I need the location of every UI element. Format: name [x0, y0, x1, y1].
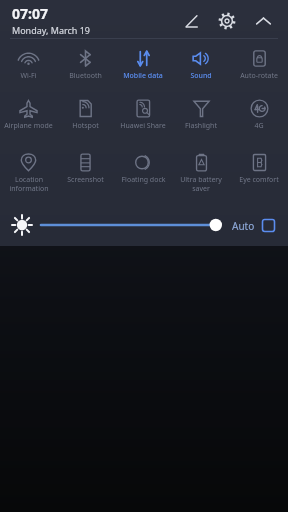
staticText: Huawei Share	[120, 121, 166, 131]
staticText: Auto	[232, 219, 255, 233]
button[interactable]: Screenshot	[57, 147, 114, 205]
staticText: Screenshot	[67, 175, 104, 185]
staticText: Monday, March 19	[12, 24, 91, 36]
button[interactable]: Location information	[0, 147, 57, 205]
button[interactable]: Eye comfort	[230, 147, 288, 205]
staticText: Hotspot	[72, 121, 99, 131]
button[interactable]: Ultra battery saver	[172, 147, 230, 205]
staticText: Sound	[190, 71, 212, 81]
staticText: 4G	[254, 121, 264, 131]
button[interactable]: Auto	[232, 218, 276, 233]
button[interactable]: 4G	[230, 93, 288, 147]
button[interactable]: Settings	[212, 6, 242, 36]
button[interactable]: Bluetooth	[57, 43, 114, 93]
button[interactable]: Collapse	[248, 6, 278, 36]
button[interactable]: Airplane mode	[0, 93, 57, 147]
button[interactable]: Edit	[176, 6, 206, 36]
staticText: Ultra battery saver	[180, 175, 222, 193]
button[interactable]: Huawei Share	[114, 93, 172, 147]
staticText: Airplane mode	[4, 121, 53, 131]
staticText: Bluetooth	[69, 71, 102, 81]
button[interactable]: Brightness	[41, 215, 222, 235]
staticText: Auto-rotate	[240, 71, 278, 81]
button[interactable]: Flashlight	[172, 93, 230, 147]
staticText: Location information	[9, 175, 49, 193]
button[interactable]: Hotspot	[57, 93, 114, 147]
staticText: Flashlight	[185, 121, 217, 131]
button[interactable]: Mobile data	[114, 43, 172, 93]
button[interactable]: Floating dock	[114, 147, 172, 205]
staticText: Mobile data	[123, 71, 163, 81]
button[interactable]: Wi-Fi	[0, 43, 57, 93]
button[interactable]: Auto-rotate	[230, 43, 288, 93]
staticText: Eye comfort	[239, 175, 279, 185]
staticText: 07:07	[12, 4, 48, 23]
button[interactable]: Sound	[172, 43, 230, 93]
staticText: Wi-Fi	[20, 71, 37, 81]
staticText: Floating dock	[121, 175, 166, 185]
